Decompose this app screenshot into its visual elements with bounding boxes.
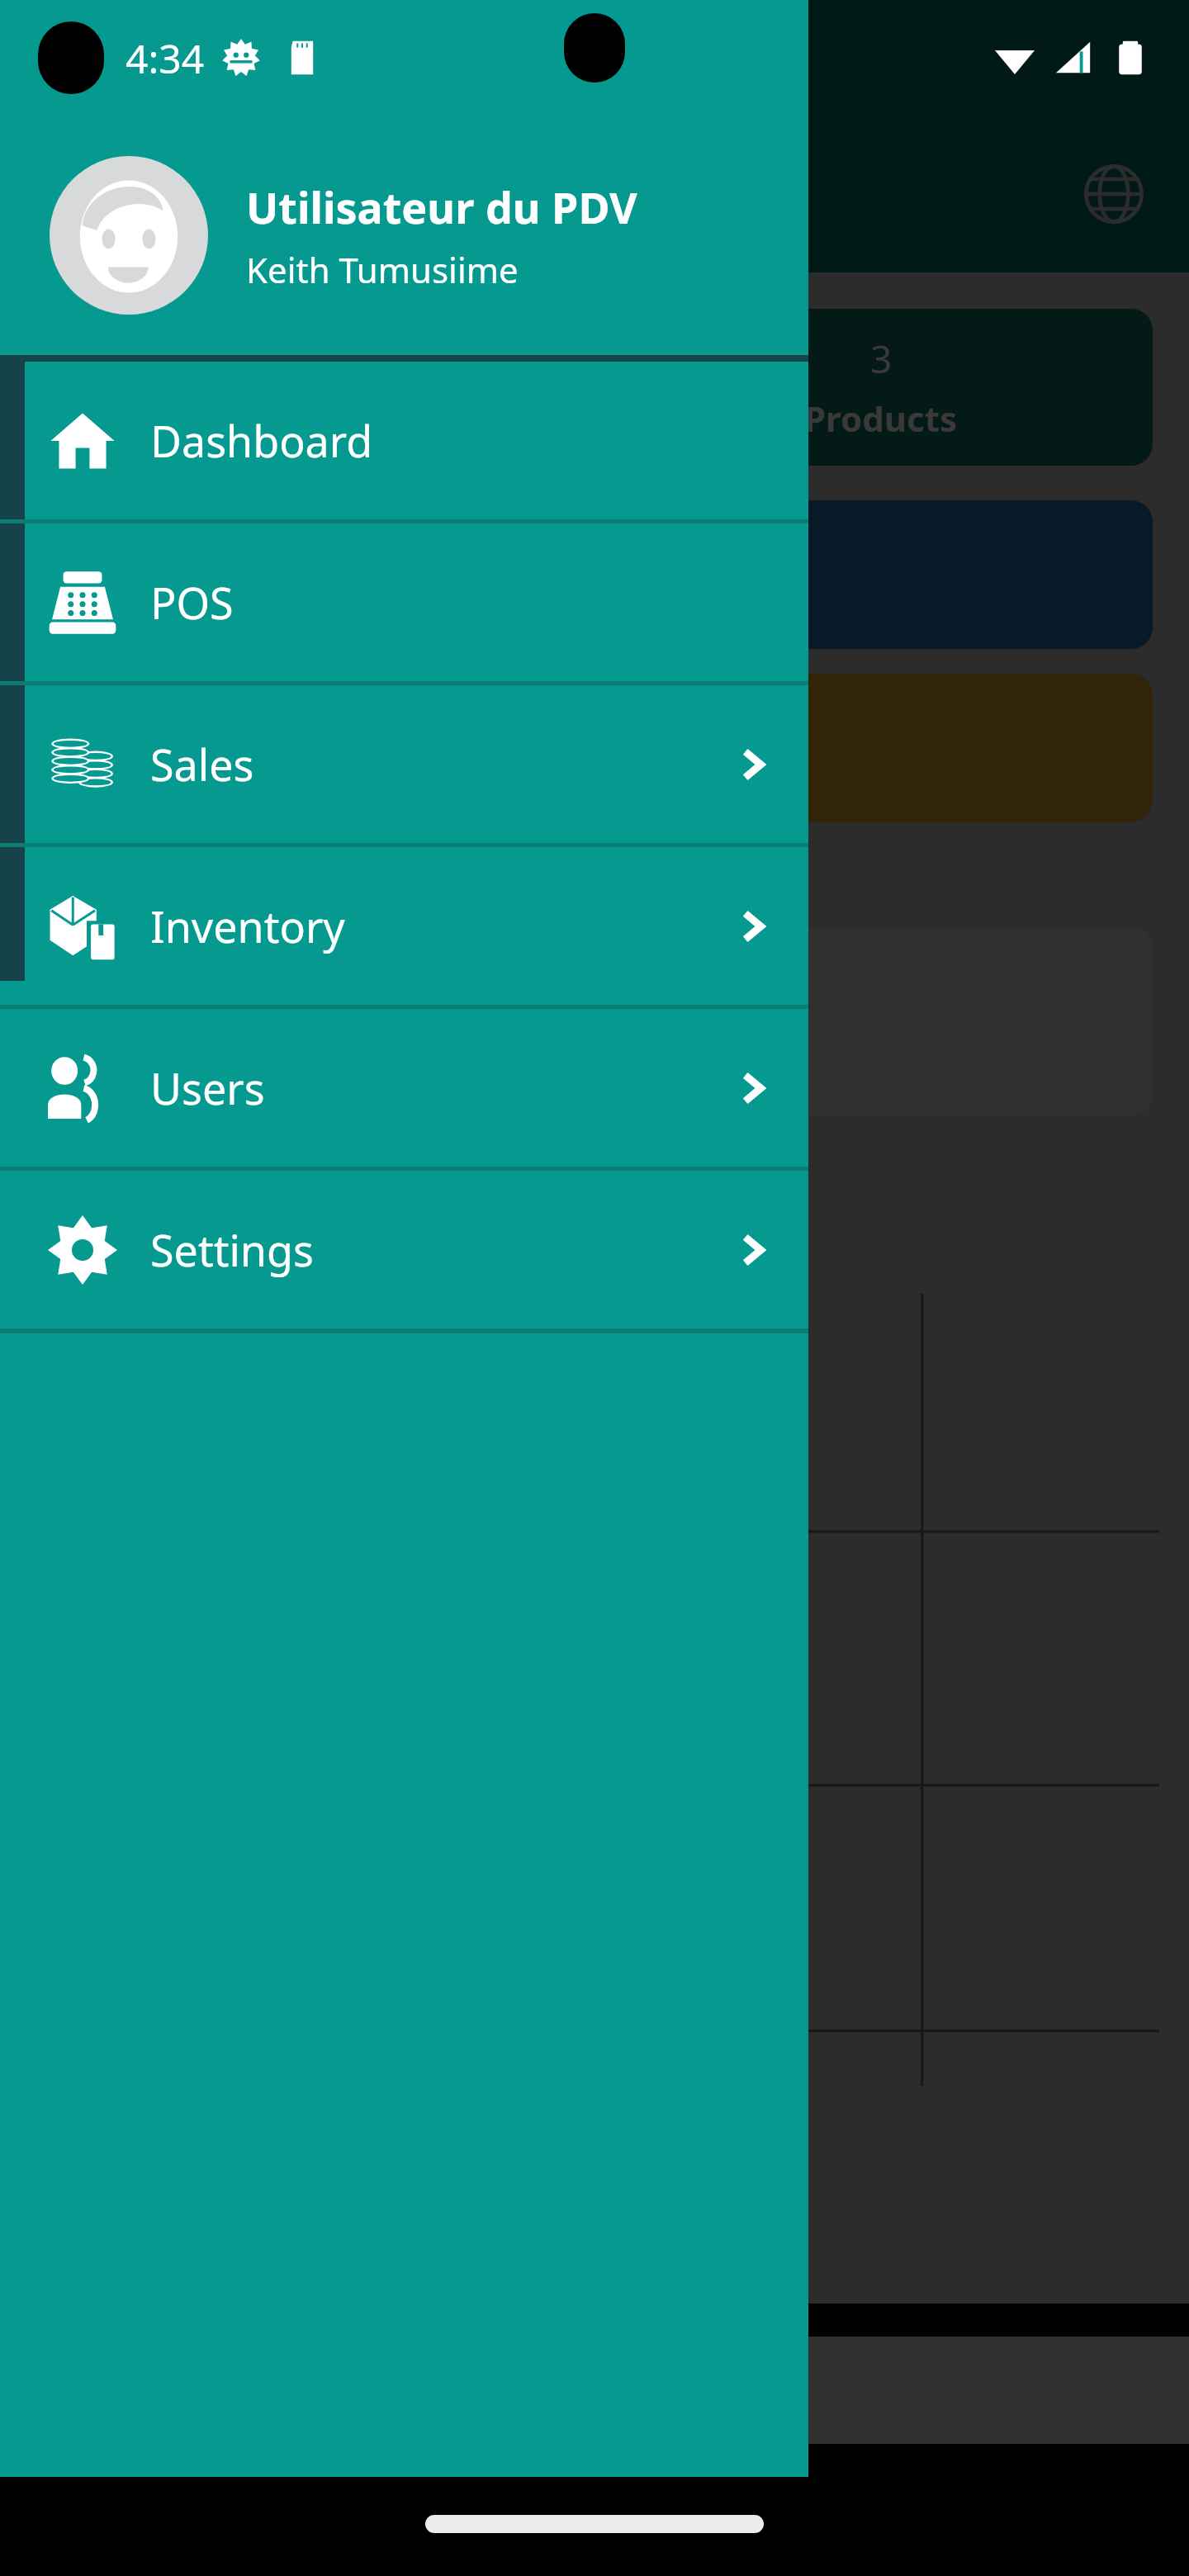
staticText: 0 [583,961,608,1020]
button[interactable]: Utilisateur du PDV [0,116,808,355]
staticText: Inventory [150,897,345,955]
staticText: Sales [40,850,141,904]
staticText: 4:34 [126,31,205,85]
staticText: Keith Tumusiime [246,246,519,293]
staticText: 3 [870,333,893,385]
button[interactable]: Dashboard [0,362,808,519]
staticText: Settings [150,1220,314,1279]
button[interactable]: March 2023 [36,1147,515,1239]
staticText: Sales [264,395,353,442]
staticText: Products [804,395,958,442]
button[interactable]: 0 [36,927,1153,1115]
button[interactable]: 8 [36,309,580,466]
staticText: March 2023 [71,1168,272,1218]
staticText: Dashboard [150,411,373,470]
staticText: Utilisateur du PDV [246,178,637,236]
button[interactable]: Language [1077,157,1151,231]
button[interactable]: Settings [0,1171,808,1328]
button[interactable]: Users [0,1009,808,1167]
button[interactable]: Sales [0,685,808,843]
button[interactable]: 3 [609,309,1153,466]
button[interactable]: Inventory [0,847,808,1005]
staticText: 8 [297,333,320,385]
staticText: POS [150,573,234,632]
staticText: Users [150,1058,265,1117]
button[interactable]: POS [0,523,808,681]
staticText: Sales [150,735,254,793]
button[interactable]: 2 [36,674,1153,822]
button[interactable] [36,500,1153,649]
